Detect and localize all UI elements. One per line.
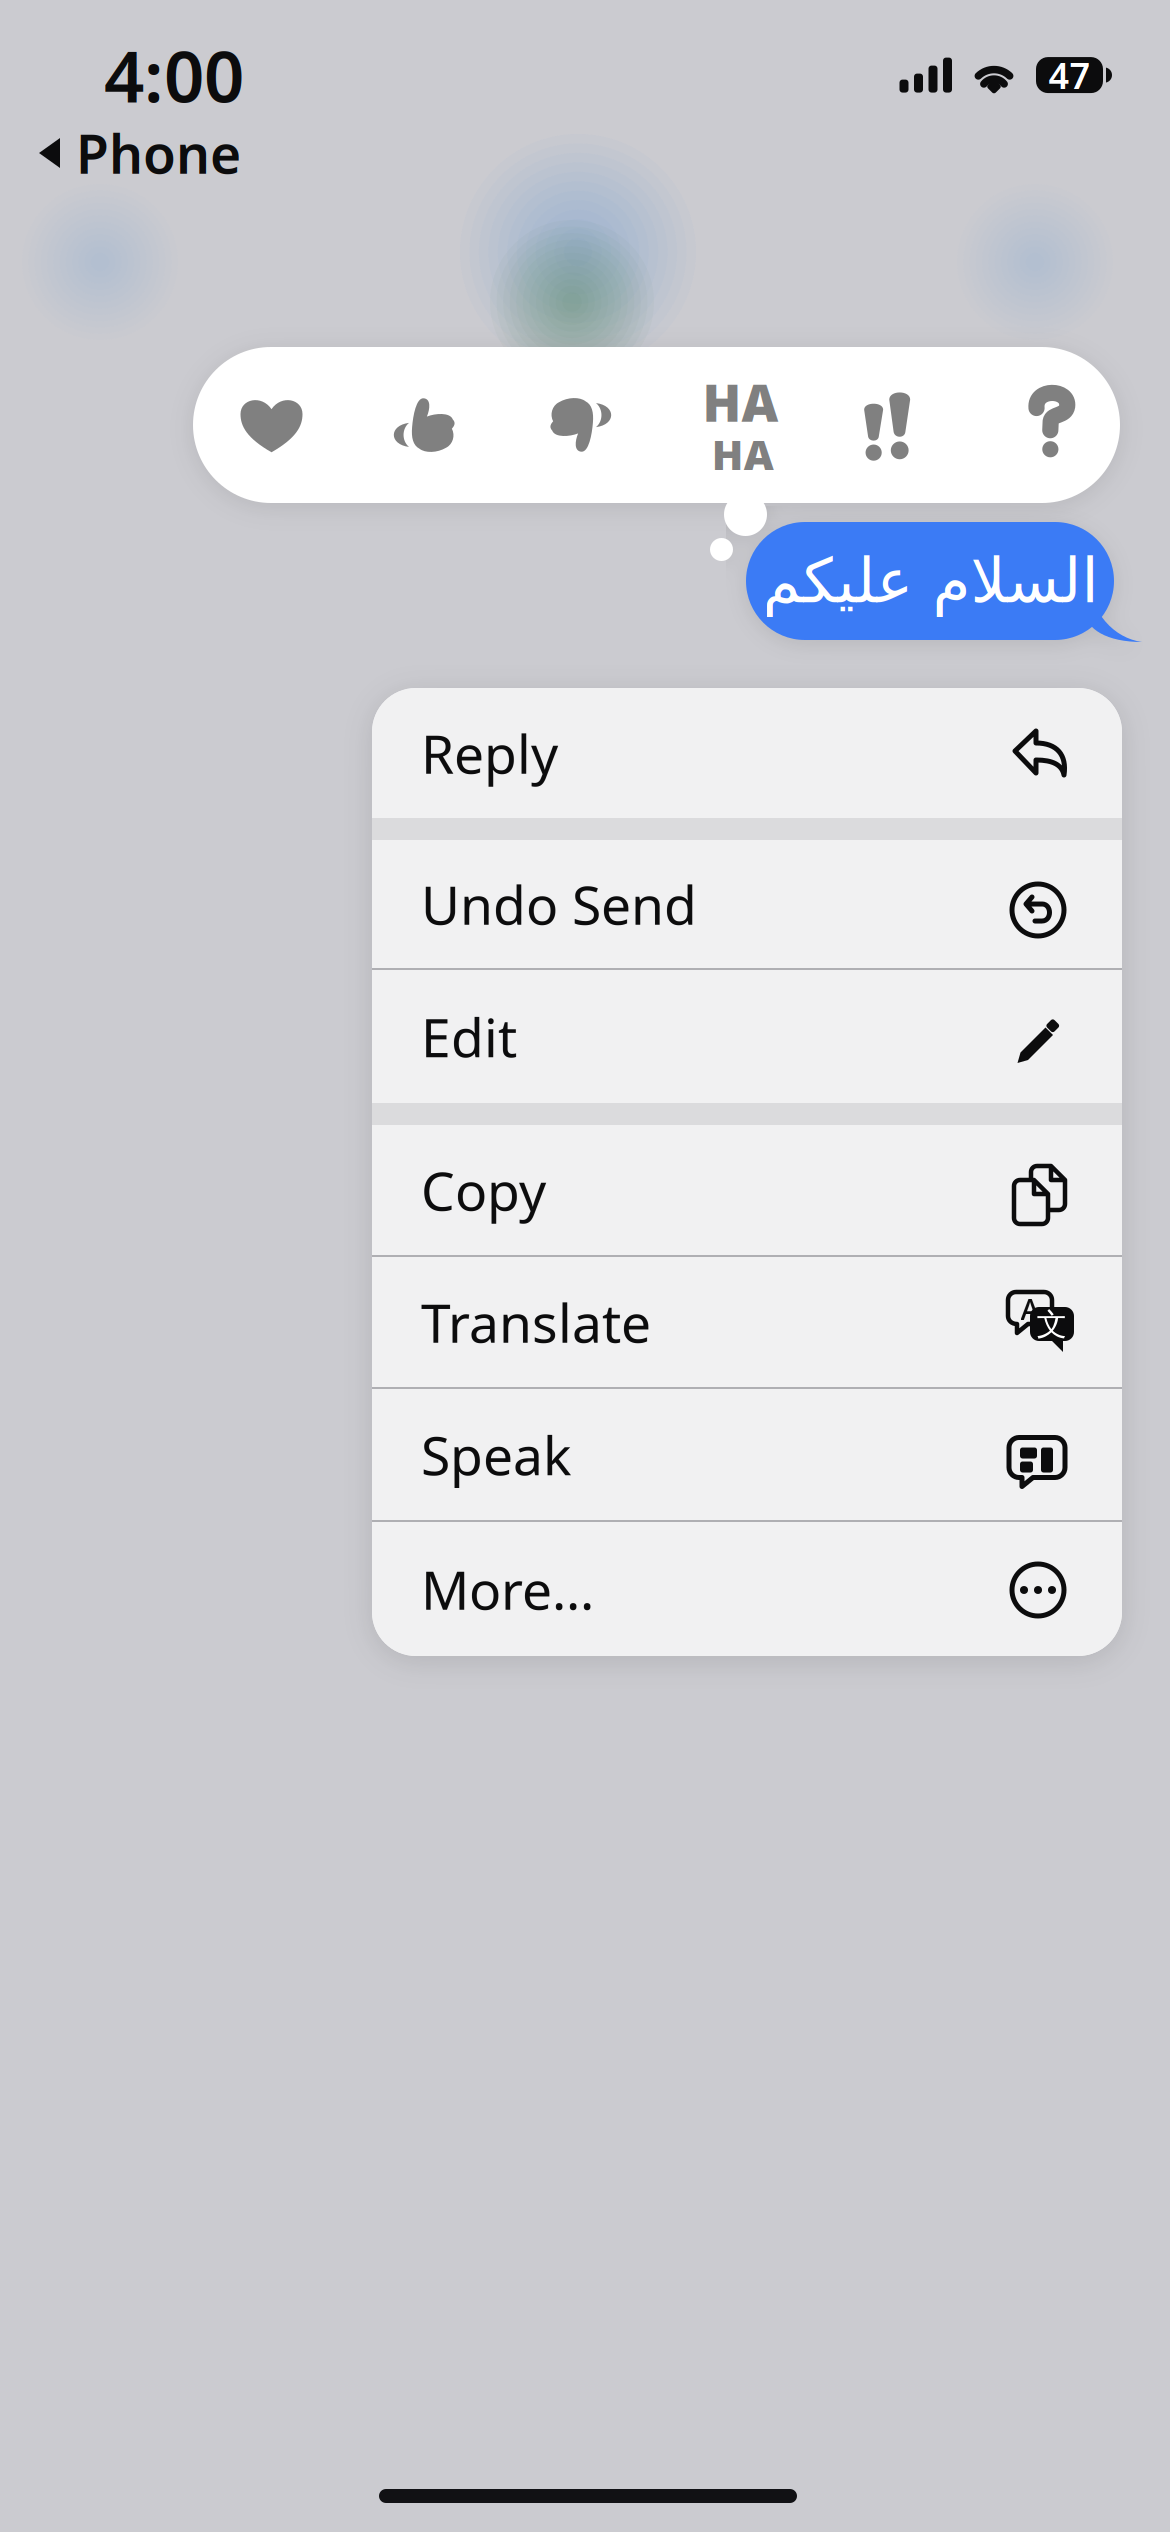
staticText: More... [421, 1554, 594, 1624]
staticText: 47 [1048, 51, 1090, 99]
button[interactable]: Phone [0, 122, 1170, 184]
button[interactable]: Question [964, 347, 1118, 503]
button[interactable]: Dislike [502, 347, 656, 503]
button[interactable]: Haha [656, 347, 810, 503]
button[interactable]: Translate [372, 1257, 1122, 1387]
staticText: السلام عليكم [762, 546, 1098, 616]
button[interactable]: Speak [372, 1389, 1122, 1520]
button[interactable]: Undo Send [372, 840, 1122, 968]
staticText: 文 [1036, 1306, 1067, 1343]
button[interactable]: Copy [372, 1125, 1122, 1255]
staticText: Translate [421, 1287, 651, 1357]
staticText: HA [712, 427, 774, 481]
staticText: Phone [76, 118, 241, 188]
button[interactable]: Reply [372, 688, 1122, 818]
staticText: Reply [421, 718, 558, 788]
button[interactable]: Love [194, 347, 348, 503]
staticText: Speak [421, 1419, 571, 1490]
button[interactable]: More... [372, 1522, 1122, 1656]
button[interactable]: Emphasize [810, 347, 964, 503]
staticText: Edit [421, 1001, 517, 1072]
staticText: A [1020, 1289, 1039, 1328]
staticText: Undo Send [421, 869, 697, 939]
button[interactable]: Like [348, 347, 502, 503]
staticText: Copy [421, 1155, 546, 1225]
button[interactable]: Edit [372, 970, 1122, 1103]
staticText: 4:00 [104, 28, 244, 122]
staticText: HA [702, 368, 778, 436]
